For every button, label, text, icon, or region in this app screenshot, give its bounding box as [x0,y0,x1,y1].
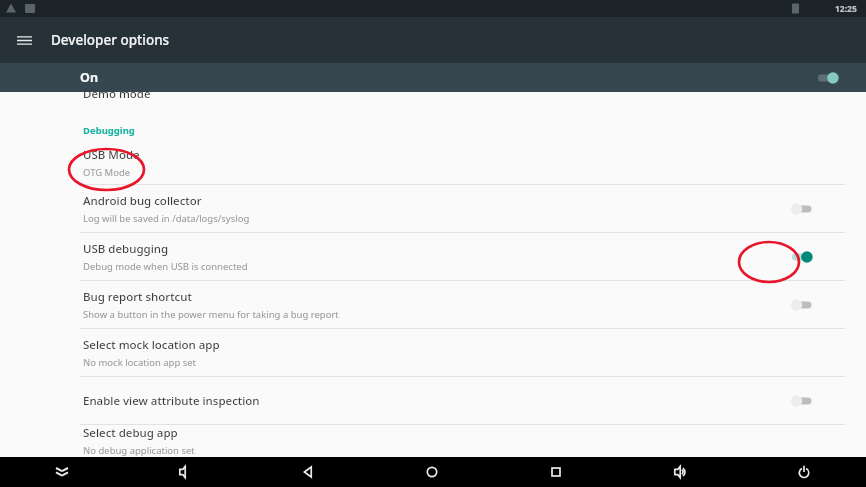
button[interactable]: Recent apps [494,457,618,487]
staticText: Bug report shortcut [83,289,192,305]
button[interactable]: Enable view attribute inspection [0,377,866,424]
button[interactable]: USB debugging [0,233,866,280]
button[interactable]: Back [246,457,370,487]
staticText: OTG Mode [83,166,131,179]
button[interactable]: Volume down [123,457,246,487]
button[interactable]: Open navigation menu [6,22,42,58]
staticText: Developer options [51,31,170,49]
button[interactable]: Power [742,457,866,487]
button[interactable]: Volume up [618,457,742,487]
staticText: 12:25 [835,3,857,15]
button[interactable]: USB Mode [0,142,866,184]
staticText: Select debug app [83,425,178,441]
staticText: No mock location app set [83,356,197,369]
staticText: USB Mode [83,147,140,163]
staticText: Demo mode [83,86,151,102]
button[interactable]: Select mock location app [0,329,866,376]
button[interactable]: On [0,63,866,92]
staticText: Debugging [83,124,135,137]
staticText: Debug mode when USB is connected [83,260,248,273]
staticText: On [80,69,99,86]
button[interactable]: Hide navigation bar [0,457,123,487]
staticText: USB debugging [83,241,169,257]
staticText: Show a button in the power menu for taki… [83,308,339,321]
button[interactable]: Android bug collector [0,185,866,232]
button[interactable]: Bug report shortcut [0,281,866,328]
button[interactable]: Home [370,457,494,487]
staticText: No debug application set [83,444,195,457]
button[interactable]: Select debug app [0,425,866,457]
staticText: Enable view attribute inspection [83,393,260,409]
staticText: Select mock location app [83,337,220,353]
staticText: Log will be saved in /data/logs/syslog [83,212,250,225]
staticText: Android bug collector [83,193,202,209]
